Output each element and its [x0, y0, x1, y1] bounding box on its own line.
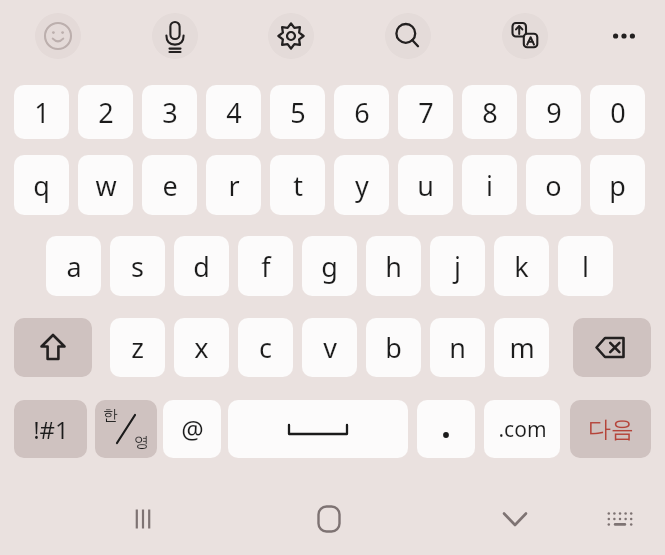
button[interactable]: i: [462, 155, 517, 215]
button[interactable]: Space: [228, 400, 408, 458]
button[interactable]: .com: [484, 400, 560, 458]
staticText: j: [454, 248, 461, 285]
button[interactable]: j: [430, 236, 485, 296]
staticText: z: [131, 329, 144, 366]
staticText: 영: [134, 433, 149, 452]
staticText: 9: [546, 94, 562, 131]
staticText: b: [385, 329, 402, 366]
button[interactable]: h: [366, 236, 421, 296]
staticText: 6: [354, 94, 370, 131]
button[interactable]: y: [334, 155, 389, 215]
button[interactable]: Search: [385, 13, 431, 59]
staticText: 1: [34, 94, 50, 131]
staticText: n: [449, 329, 466, 366]
staticText: p: [609, 167, 626, 204]
button[interactable]: 1: [14, 85, 69, 139]
button[interactable]: n: [430, 318, 485, 377]
button[interactable]: f: [238, 236, 293, 296]
button[interactable]: o: [526, 155, 581, 215]
staticText: h: [385, 248, 402, 285]
staticText: y: [355, 167, 369, 204]
button[interactable]: b: [366, 318, 421, 377]
staticText: t: [293, 167, 303, 204]
staticText: k: [514, 248, 529, 285]
button[interactable]: g: [302, 236, 357, 296]
staticText: r: [228, 167, 240, 204]
button[interactable]: Home: [296, 490, 362, 548]
staticText: f: [261, 248, 271, 285]
button[interactable]: t: [270, 155, 325, 215]
staticText: s: [131, 248, 144, 285]
staticText: c: [259, 329, 272, 366]
button[interactable]: m: [494, 318, 549, 377]
button[interactable]: 0: [590, 85, 645, 139]
staticText: w: [95, 167, 117, 204]
button[interactable]: a: [46, 236, 101, 296]
button[interactable]: e: [142, 155, 197, 215]
staticText: 5: [290, 94, 306, 131]
staticText: 한: [103, 406, 118, 425]
button[interactable]: 9: [526, 85, 581, 139]
button[interactable]: @: [163, 400, 221, 458]
staticText: m: [509, 329, 535, 366]
button[interactable]: Change keyboard: [592, 494, 648, 544]
button[interactable]: More options: [601, 13, 647, 59]
button[interactable]: u: [398, 155, 453, 215]
button[interactable]: x: [174, 318, 229, 377]
button[interactable]: l: [558, 236, 613, 296]
button[interactable]: q: [14, 155, 69, 215]
button[interactable]: !#1: [14, 400, 87, 458]
button[interactable]: Shift: [14, 318, 92, 377]
button[interactable]: Emoji: [35, 13, 81, 59]
button[interactable]: Voice input: [152, 13, 198, 59]
staticText: @: [181, 412, 204, 446]
staticText: 다음: [588, 415, 634, 444]
button[interactable]: Hide keyboard: [482, 490, 548, 548]
staticText: l: [582, 248, 589, 285]
button[interactable]: d: [174, 236, 229, 296]
staticText: d: [193, 248, 210, 285]
staticText: v: [323, 329, 337, 366]
button[interactable]: 다음: [570, 400, 651, 458]
staticText: !#1: [33, 413, 69, 446]
staticText: g: [321, 248, 338, 285]
button[interactable]: Settings: [268, 13, 314, 59]
staticText: 7: [418, 94, 434, 131]
staticText: q: [33, 167, 50, 204]
button[interactable]: r: [206, 155, 261, 215]
button[interactable]: Translate: [502, 13, 548, 59]
button[interactable]: v: [302, 318, 357, 377]
button[interactable]: 4: [206, 85, 261, 139]
button[interactable]: 7: [398, 85, 453, 139]
staticText: .com: [498, 415, 547, 444]
button[interactable]: 5: [270, 85, 325, 139]
staticText: a: [66, 248, 82, 285]
staticText: 2: [98, 94, 114, 131]
button[interactable]: c: [238, 318, 293, 377]
staticText: o: [545, 167, 562, 204]
button[interactable]: Korean English toggle: [95, 400, 157, 458]
button[interactable]: 3: [142, 85, 197, 139]
button[interactable]: Backspace: [573, 318, 651, 377]
staticText: x: [194, 329, 209, 366]
staticText: i: [486, 167, 493, 204]
button[interactable]: w: [78, 155, 133, 215]
button[interactable]: s: [110, 236, 165, 296]
staticText: e: [162, 167, 178, 204]
button[interactable]: p: [590, 155, 645, 215]
button[interactable]: 8: [462, 85, 517, 139]
button[interactable]: 2: [78, 85, 133, 139]
button[interactable]: Recent apps: [110, 490, 176, 548]
button[interactable]: z: [110, 318, 165, 377]
staticText: u: [417, 167, 434, 204]
staticText: 4: [226, 94, 242, 131]
staticText: 0: [610, 94, 626, 131]
button[interactable]: k: [494, 236, 549, 296]
staticText: 8: [482, 94, 498, 131]
button[interactable]: 6: [334, 85, 389, 139]
button[interactable]: Period: [417, 400, 475, 458]
staticText: 3: [162, 94, 178, 131]
